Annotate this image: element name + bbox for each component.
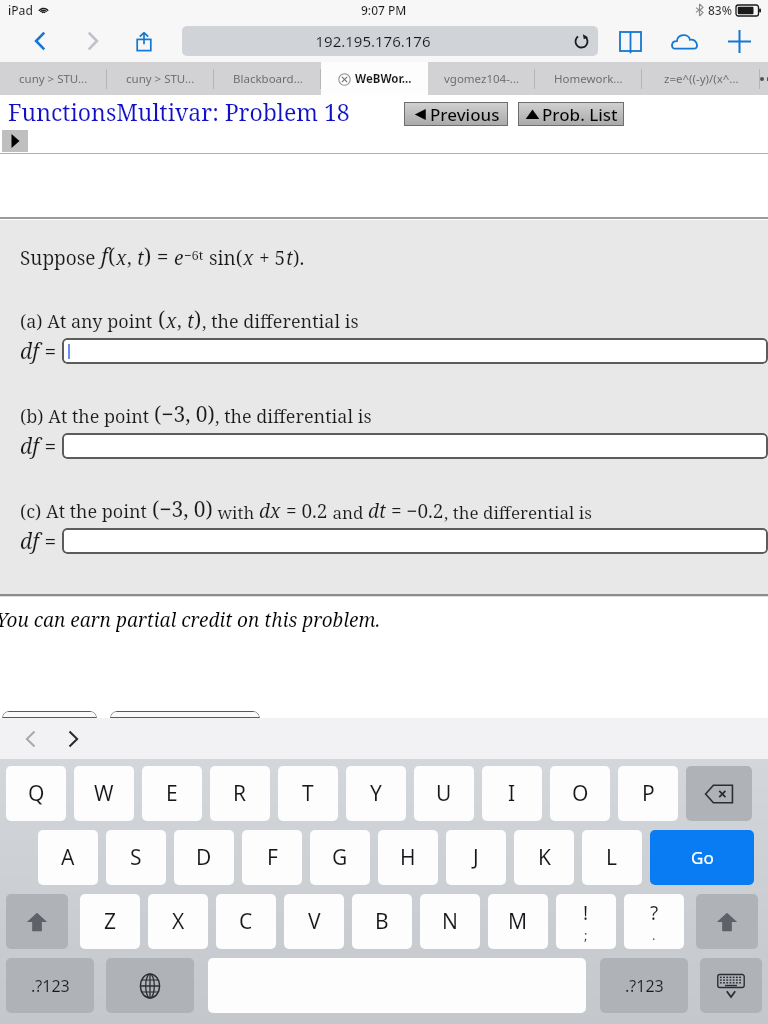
staticText: ( bbox=[158, 305, 166, 334]
staticText: O bbox=[572, 779, 589, 808]
button[interactable]: A bbox=[38, 830, 98, 885]
button[interactable]: cuny > STU... bbox=[107, 62, 214, 95]
staticText: iPad bbox=[8, 2, 33, 18]
button[interactable]: K bbox=[514, 830, 574, 885]
staticText: (b) At the point bbox=[20, 404, 154, 429]
button[interactable]: Next bbox=[2, 130, 28, 152]
staticText: N bbox=[442, 907, 458, 936]
button[interactable]: .?123 bbox=[6, 958, 94, 1013]
button[interactable]: V bbox=[284, 894, 344, 949]
button[interactable]: P bbox=[618, 766, 678, 821]
button[interactable]: iCloud Tabs bbox=[664, 20, 706, 62]
staticText: dx bbox=[259, 498, 281, 524]
staticText: B bbox=[375, 907, 389, 936]
button[interactable]: N bbox=[420, 894, 480, 949]
staticText: e bbox=[174, 245, 184, 271]
button[interactable]: E bbox=[142, 766, 202, 821]
button[interactable] bbox=[62, 528, 768, 554]
staticText: cuny > STU... bbox=[19, 71, 88, 87]
staticText: , the differential is bbox=[202, 309, 359, 334]
button[interactable]: J bbox=[446, 830, 506, 885]
staticText: Y bbox=[370, 779, 382, 808]
button[interactable]: Back bbox=[20, 21, 60, 61]
staticText: (−3, 0) bbox=[152, 495, 213, 524]
button[interactable]: T bbox=[278, 766, 338, 821]
staticText: 9:07 PM bbox=[361, 2, 407, 18]
button[interactable]: M bbox=[488, 894, 548, 949]
button[interactable]: I bbox=[482, 766, 542, 821]
button[interactable]: 192.195.176.176 bbox=[182, 26, 598, 56]
staticText: df bbox=[20, 432, 39, 461]
staticText: 192.195.176.176 bbox=[182, 31, 564, 51]
button[interactable]: New Tab bbox=[718, 20, 760, 62]
button[interactable]: O bbox=[550, 766, 610, 821]
button[interactable]: Prob. List bbox=[518, 102, 624, 126]
button[interactable]: H bbox=[378, 830, 438, 885]
staticText: D bbox=[196, 843, 212, 872]
button[interactable]: WeBWor... bbox=[321, 62, 428, 95]
button[interactable]: S bbox=[106, 830, 166, 885]
button[interactable]: ? bbox=[624, 894, 684, 949]
button[interactable]: Delete bbox=[686, 766, 752, 821]
staticText: V bbox=[308, 907, 321, 936]
button[interactable]: More tabs bbox=[760, 62, 768, 95]
staticText: P bbox=[642, 779, 655, 808]
button[interactable]: D bbox=[174, 830, 234, 885]
button[interactable] bbox=[62, 433, 768, 459]
staticText: FunctionsMultivar: Problem 18 bbox=[8, 96, 350, 127]
button[interactable]: Shift bbox=[696, 894, 758, 949]
button[interactable]: Share bbox=[125, 22, 163, 60]
button[interactable]: Hide keyboard bbox=[700, 958, 762, 1013]
button[interactable]: F bbox=[242, 830, 302, 885]
staticText: U bbox=[436, 779, 452, 808]
staticText: . bbox=[652, 926, 656, 944]
button[interactable]: Blackboard... bbox=[214, 62, 321, 95]
button[interactable]: .?123 bbox=[600, 958, 688, 1013]
staticText: W bbox=[94, 779, 114, 808]
button[interactable]: Previous bbox=[404, 102, 508, 126]
button[interactable]: ! bbox=[556, 894, 616, 949]
staticText: = −0.2 bbox=[386, 498, 444, 524]
staticText: ) bbox=[194, 305, 202, 334]
button[interactable]: U bbox=[414, 766, 474, 821]
button[interactable]: C bbox=[216, 894, 276, 949]
staticText: , the differential is bbox=[444, 501, 592, 524]
button[interactable]: Bookmarks bbox=[610, 21, 650, 61]
button[interactable]: Homework... bbox=[535, 62, 642, 95]
button[interactable]: z=e^((-y)/(x^... bbox=[642, 62, 760, 95]
staticText: t bbox=[187, 308, 194, 334]
button[interactable]: Go bbox=[650, 830, 754, 885]
button[interactable]: B bbox=[352, 894, 412, 949]
staticText: ? bbox=[650, 900, 659, 926]
button[interactable]: R bbox=[210, 766, 270, 821]
button[interactable]: Y bbox=[346, 766, 406, 821]
button[interactable]: W bbox=[74, 766, 134, 821]
staticText: A bbox=[61, 843, 75, 872]
staticText: 83% bbox=[708, 2, 732, 18]
button[interactable]: L bbox=[582, 830, 642, 885]
staticText: Blackboard... bbox=[233, 71, 303, 87]
staticText: Z bbox=[104, 907, 117, 936]
button[interactable]: Shift bbox=[6, 894, 68, 949]
button[interactable]: Next field bbox=[52, 718, 94, 760]
button[interactable]: Forward bbox=[72, 21, 112, 61]
staticText: You can earn partial credit on this prob… bbox=[0, 607, 381, 633]
staticText: Prob. List bbox=[542, 103, 618, 126]
button[interactable]: X bbox=[148, 894, 208, 949]
button[interactable]: cuny > STU... bbox=[0, 62, 107, 95]
button[interactable]: Previous field bbox=[10, 718, 52, 760]
button[interactable]: vgomez104-... bbox=[428, 62, 535, 95]
button[interactable]: Q bbox=[6, 766, 66, 821]
staticText: = bbox=[39, 337, 62, 366]
button[interactable]: Z bbox=[80, 894, 140, 949]
button[interactable]: G bbox=[310, 830, 370, 885]
staticText: , bbox=[127, 245, 137, 271]
staticText: df bbox=[20, 527, 39, 556]
button[interactable] bbox=[62, 338, 768, 364]
staticText: x bbox=[243, 245, 254, 271]
button[interactable]: Change keyboard bbox=[106, 958, 194, 1013]
staticText: + 5 bbox=[254, 245, 286, 271]
staticText: F bbox=[267, 843, 278, 872]
staticText: .?123 bbox=[31, 975, 70, 997]
